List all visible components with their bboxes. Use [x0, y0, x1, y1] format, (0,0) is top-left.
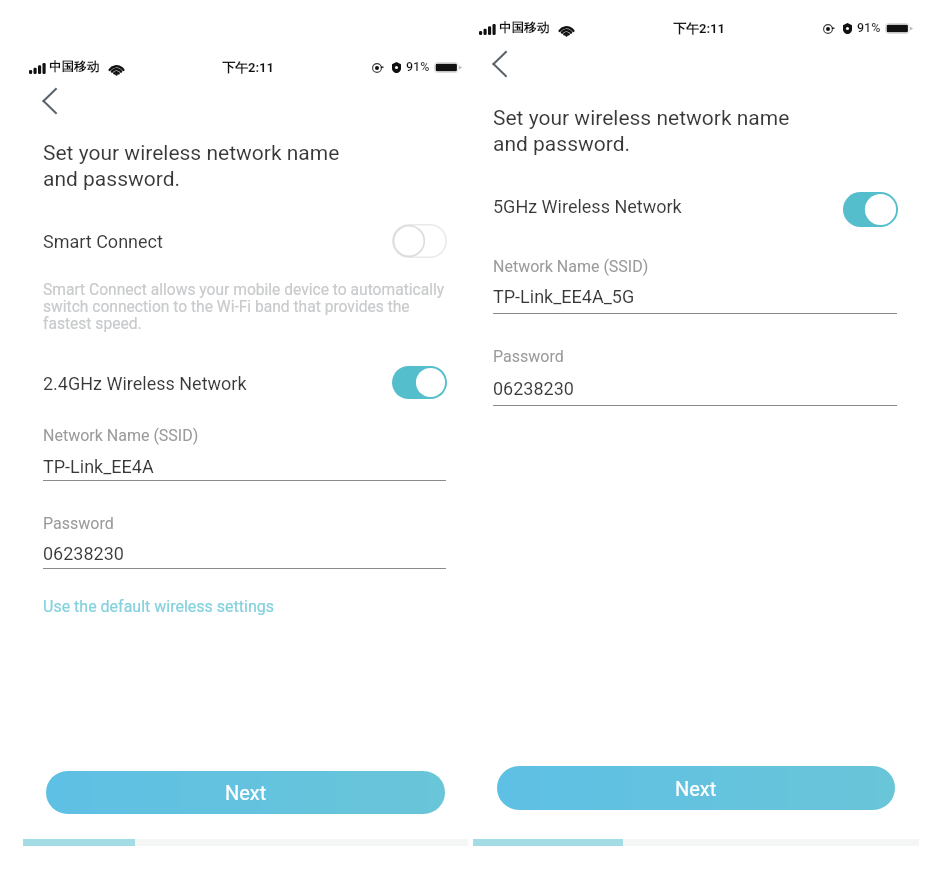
staticText: TP-Link_EE4A_5G [493, 286, 635, 307]
button[interactable]: Use the default wireless settings [43, 597, 274, 616]
button[interactable]: Network Name (SSID) field [43, 423, 446, 483]
staticText: 5GHz Wireless Network [493, 196, 682, 217]
button[interactable]: Back [481, 46, 517, 82]
button[interactable]: Password field [43, 511, 446, 571]
staticText: Password [43, 514, 114, 533]
staticText: 91% [406, 59, 430, 74]
button[interactable]: 2.4GHz Wireless Network on [392, 366, 447, 399]
staticText: 中国移动 [49, 59, 99, 75]
staticText: 06238230 [493, 378, 574, 399]
staticText: Network Name (SSID) [43, 426, 199, 445]
staticText: 下午2:11 [673, 20, 726, 36]
button[interactable]: Next [497, 766, 895, 810]
staticText: 下午2:11 [222, 59, 275, 75]
staticText: Network Name (SSID) [493, 257, 649, 276]
button[interactable]: 5GHz Wireless Network on [843, 192, 898, 227]
staticText: Smart Connect allows your mobile device … [43, 281, 445, 333]
staticText: 91% [857, 20, 881, 35]
staticText: Password [493, 347, 564, 366]
button[interactable]: Network Name (SSID) field [493, 254, 897, 314]
staticText: 中国移动 [499, 20, 549, 36]
button[interactable]: Password field [493, 344, 897, 410]
staticText: Set your wireless network name and passw… [43, 141, 340, 191]
button[interactable]: Back [31, 83, 67, 119]
button[interactable]: Next [46, 771, 445, 814]
staticText: Next [225, 781, 267, 804]
staticText: Smart Connect [43, 231, 163, 252]
staticText: Set your wireless network name and passw… [493, 106, 790, 156]
staticText: 06238230 [43, 543, 124, 564]
button[interactable]: Smart Connect off [392, 224, 447, 258]
staticText: Next [675, 777, 717, 800]
staticText: Use the default wireless settings [43, 597, 274, 616]
staticText: 2.4GHz Wireless Network [43, 373, 247, 394]
staticText: TP-Link_EE4A [43, 456, 154, 477]
